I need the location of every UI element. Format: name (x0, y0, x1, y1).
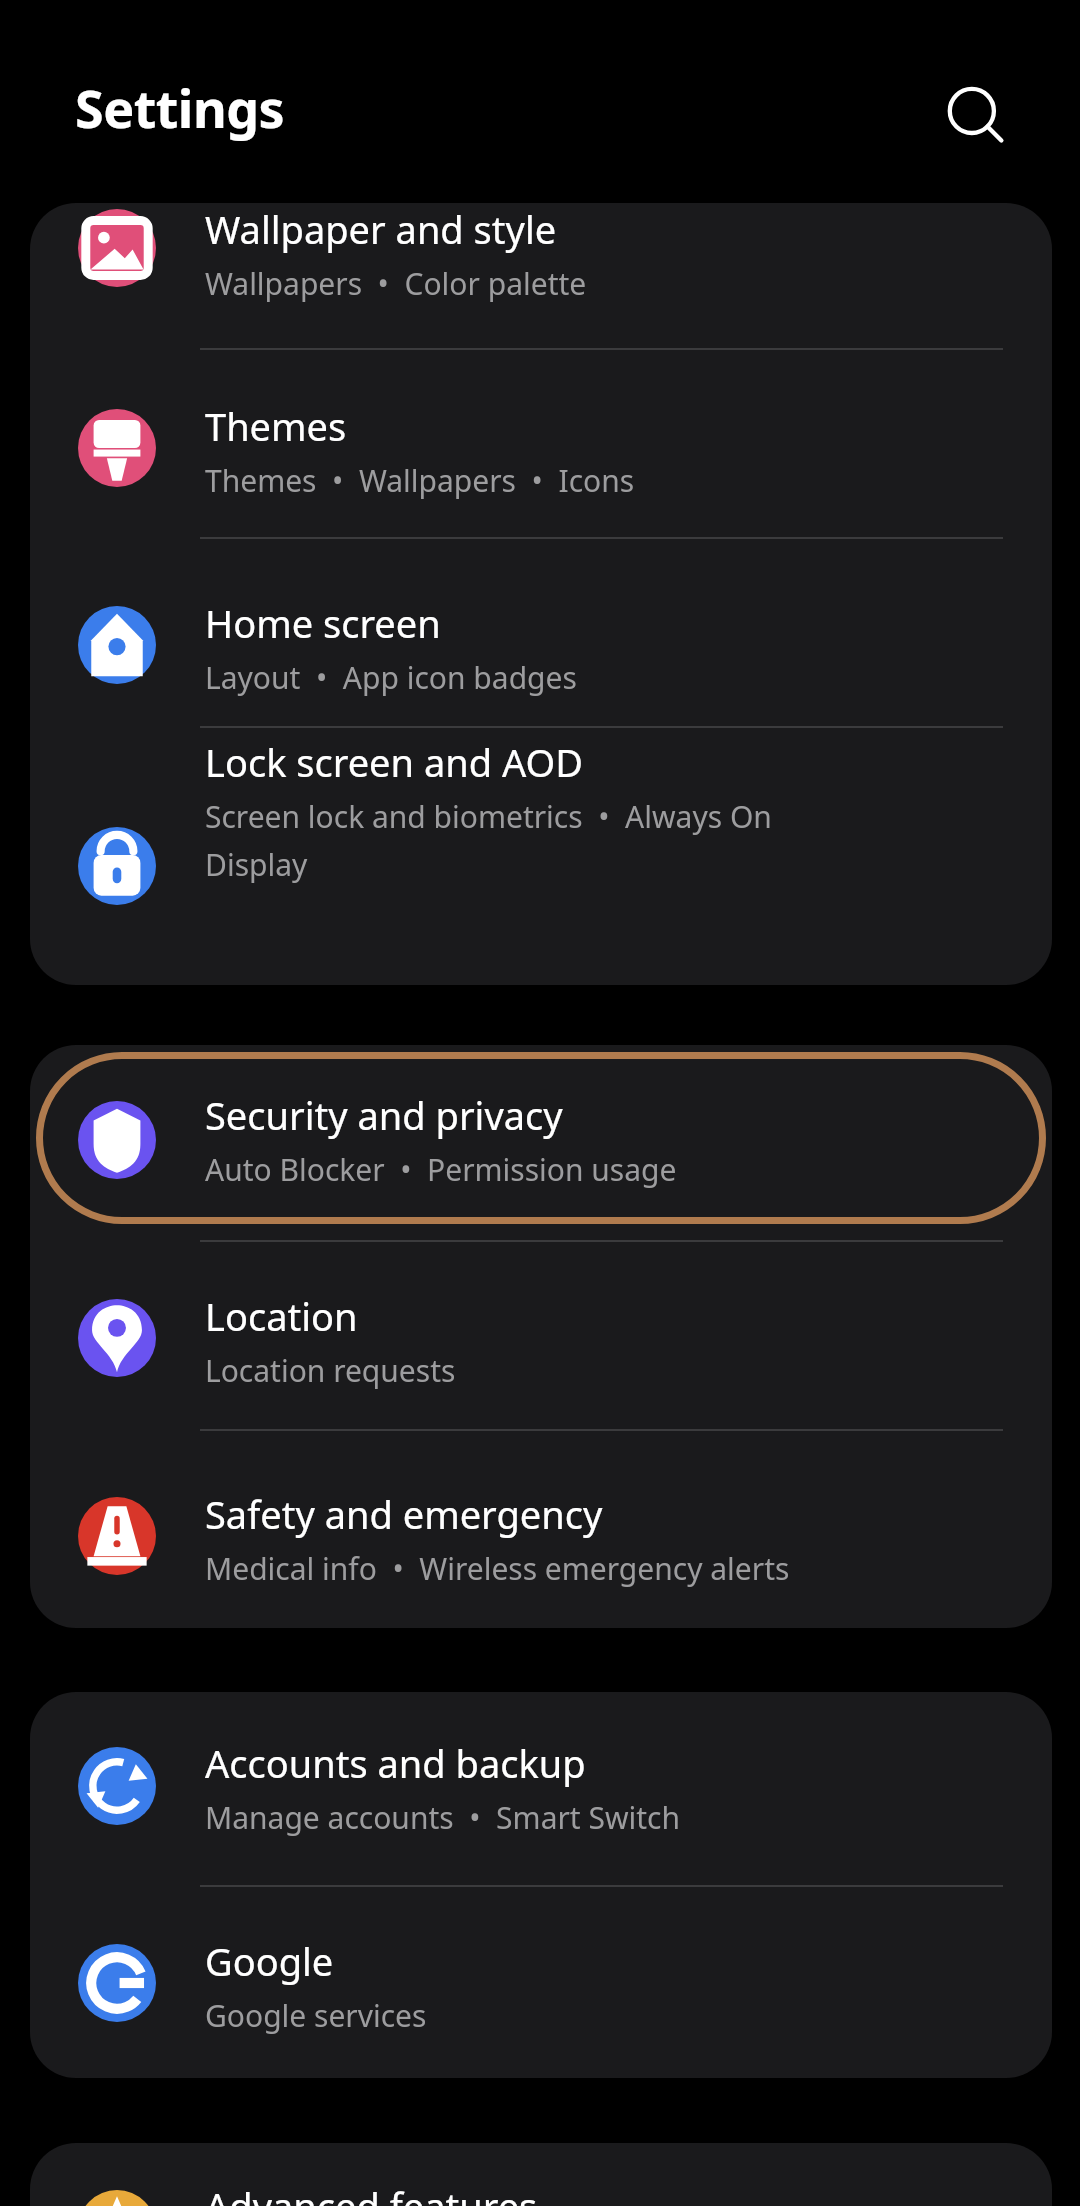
staticText: Screen lock and biometrics • Always On (205, 796, 772, 837)
staticText: Themes (205, 400, 347, 452)
staticText: Auto Blocker • Permission usage (205, 1149, 677, 1190)
button[interactable] (30, 1886, 1052, 2078)
staticText: Security and privacy (205, 1089, 563, 1141)
button[interactable] (30, 2143, 1052, 2206)
staticText: Safety and emergency (205, 1488, 603, 1540)
staticText: Accounts and backup (205, 1737, 586, 1789)
button[interactable] (30, 727, 1052, 985)
button[interactable] (30, 349, 1052, 537)
staticText: Advanced features (205, 2180, 538, 2206)
staticText: Home screen (205, 597, 441, 649)
button[interactable] (36, 1052, 1046, 1224)
button[interactable] (30, 538, 1052, 726)
button[interactable] (30, 1692, 1052, 1885)
staticText: Location requests (205, 1350, 456, 1391)
staticText: Settings (75, 72, 285, 143)
staticText: Medical info • Wireless emergency alerts (205, 1548, 790, 1589)
staticText: Google (205, 1935, 334, 1987)
staticText: Wallpapers • Color palette (205, 263, 587, 304)
staticText: Location (205, 1290, 358, 1342)
staticText: Wallpaper and style (205, 203, 557, 255)
staticText: Google services (205, 1995, 427, 2036)
staticText: Themes • Wallpapers • Icons (205, 460, 635, 501)
staticText: Layout • App icon badges (205, 657, 577, 698)
staticText: Lock screen and AOD (205, 736, 583, 788)
button[interactable] (30, 1241, 1052, 1429)
button[interactable] (30, 1430, 1052, 1628)
staticText: Display (205, 844, 308, 885)
button[interactable] (30, 203, 1052, 348)
staticText: Manage accounts • Smart Switch (205, 1797, 681, 1838)
button[interactable]: Search settings (930, 70, 1020, 160)
